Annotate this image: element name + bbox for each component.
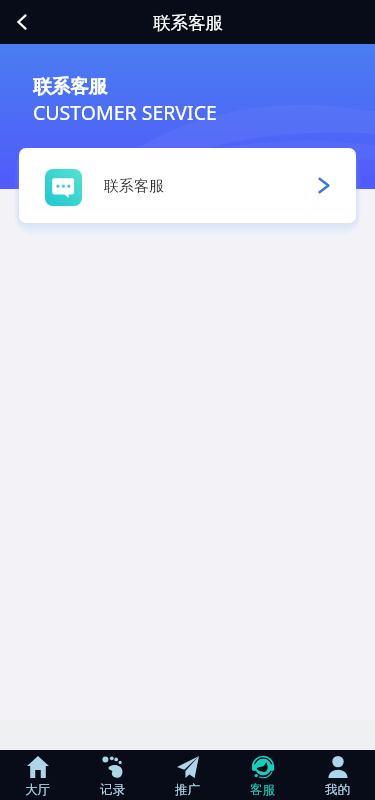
staticText: 我的 xyxy=(325,782,350,798)
button[interactable]: 推广 xyxy=(150,750,225,800)
button[interactable]: 大厅 xyxy=(0,750,75,800)
staticText: 大厅 xyxy=(25,782,50,798)
staticText: 联系客服 xyxy=(153,12,223,34)
staticText: 客服 xyxy=(250,782,275,798)
staticText: 推广 xyxy=(175,782,200,798)
button[interactable]: 客服 xyxy=(225,750,300,800)
staticText: 联系客服 xyxy=(104,177,164,196)
staticText: CUSTOMER SERVICE xyxy=(33,99,217,126)
button[interactable]: 联系客服 xyxy=(19,148,356,223)
staticText: 联系客服 xyxy=(33,75,107,98)
button[interactable]: 我的 xyxy=(300,750,375,800)
staticText: 记录 xyxy=(100,782,125,798)
button[interactable]: 记录 xyxy=(75,750,150,800)
button[interactable]: Back xyxy=(0,0,44,44)
